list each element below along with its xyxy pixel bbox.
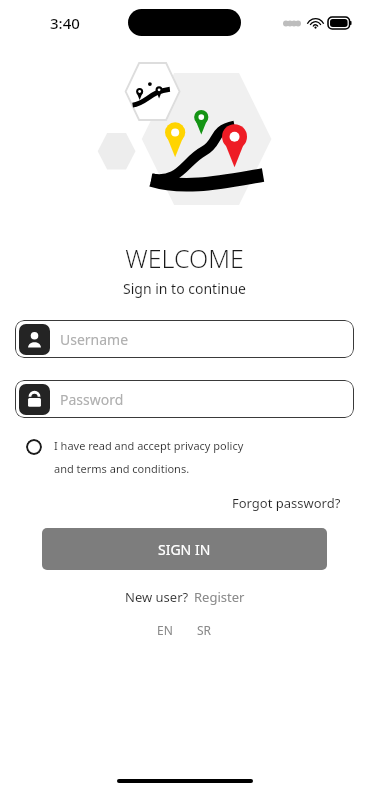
staticText: Username: [60, 330, 129, 349]
staticText: SIGN IN: [158, 540, 211, 559]
staticText: Password: [60, 390, 124, 409]
other: Accept privacy policy: [26, 439, 42, 455]
button[interactable]: Register: [194, 588, 245, 606]
staticText: WELCOME: [0, 241, 369, 275]
button[interactable]: Username: [15, 320, 354, 358]
button[interactable]: Accept privacy policy: [0, 436, 369, 478]
button[interactable]: SR: [189, 620, 220, 640]
staticText: Sign in to continue: [0, 279, 369, 298]
staticText: and terms and conditions.: [54, 461, 190, 476]
button[interactable]: Password: [15, 380, 354, 418]
button[interactable]: SIGN IN: [42, 528, 327, 570]
staticText: I have read and accept privacy policy: [54, 438, 244, 453]
button[interactable]: Forgot password?: [228, 490, 345, 516]
staticText: 3:40: [50, 13, 80, 33]
staticText: New user?: [125, 588, 189, 606]
button[interactable]: EN: [149, 620, 181, 640]
